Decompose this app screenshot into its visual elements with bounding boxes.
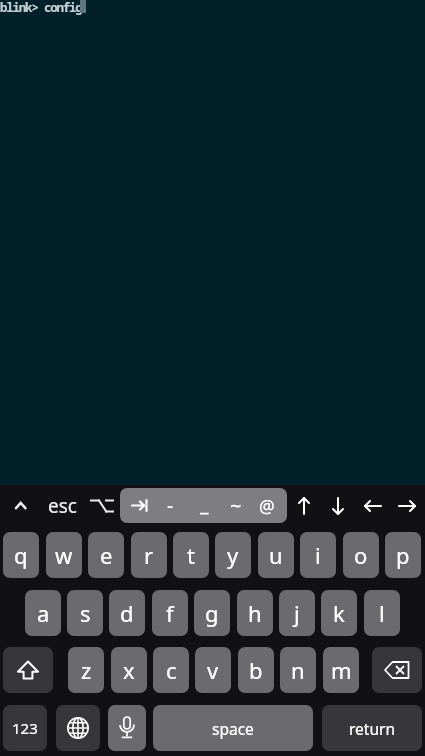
button[interactable]: k — [321, 590, 357, 636]
button[interactable]: f — [152, 590, 188, 636]
button[interactable]: g — [194, 590, 230, 636]
staticText: x — [123, 655, 135, 685]
button[interactable]: j — [279, 590, 315, 636]
button[interactable]: 123 — [3, 705, 47, 751]
button[interactable]: x — [111, 647, 147, 693]
button[interactable]: return — [322, 705, 422, 751]
button[interactable]: p — [385, 532, 421, 578]
staticText: w — [55, 540, 73, 570]
staticText: l — [379, 598, 385, 628]
staticText: i — [315, 540, 321, 570]
button[interactable] — [3, 647, 53, 693]
button[interactable]: i — [300, 532, 336, 578]
button[interactable]: r — [131, 532, 167, 578]
staticText: 123 — [12, 718, 38, 738]
staticText: o — [354, 540, 368, 570]
button[interactable] — [123, 488, 156, 523]
button[interactable]: c — [153, 647, 189, 693]
staticText: space — [212, 718, 254, 739]
button[interactable]: blink> config — [0, 0, 425, 485]
button[interactable] — [360, 493, 386, 519]
staticText: h — [248, 598, 262, 628]
staticText: esc — [48, 493, 77, 519]
button[interactable] — [325, 493, 351, 519]
staticText: n — [291, 655, 305, 685]
staticText: j — [294, 598, 300, 628]
staticText: u — [269, 540, 283, 570]
staticText: t — [187, 540, 195, 570]
button[interactable] — [291, 493, 317, 519]
staticText: y — [227, 540, 239, 570]
staticText: v — [207, 655, 219, 685]
staticText: ~ — [230, 492, 242, 519]
staticText: m — [331, 655, 352, 685]
button[interactable] — [56, 705, 100, 751]
button[interactable]: b — [238, 647, 274, 693]
staticText: q — [14, 540, 28, 570]
button[interactable]: u — [258, 532, 294, 578]
button[interactable]: o — [343, 532, 379, 578]
button[interactable]: space — [153, 705, 313, 751]
button[interactable]: y — [215, 532, 251, 578]
staticText: r — [144, 540, 154, 570]
button[interactable]: e — [88, 532, 124, 578]
staticText: p — [396, 540, 410, 570]
staticText: d — [120, 598, 134, 628]
staticText: @ — [259, 494, 275, 518]
button[interactable]: s — [67, 590, 103, 636]
staticText: return — [349, 718, 395, 739]
button[interactable]: w — [46, 532, 82, 578]
staticText: f — [166, 598, 174, 628]
button[interactable] — [87, 492, 117, 519]
button[interactable]: n — [280, 647, 316, 693]
staticText: k — [333, 598, 345, 628]
staticText: - — [167, 493, 174, 519]
button[interactable]: h — [237, 590, 273, 636]
staticText: blink> config — [0, 0, 82, 16]
button[interactable]: z — [68, 647, 104, 693]
button[interactable]: q — [3, 532, 39, 578]
staticText: a — [37, 598, 50, 628]
button[interactable]: d — [109, 590, 145, 636]
button[interactable] — [108, 705, 146, 751]
button[interactable]: a — [25, 590, 61, 636]
button[interactable]: m — [323, 647, 359, 693]
staticText: _ — [200, 491, 209, 517]
button[interactable] — [394, 493, 420, 519]
button[interactable]: t — [173, 532, 209, 578]
button[interactable] — [8, 492, 34, 519]
staticText: b — [249, 655, 263, 685]
staticText: c — [166, 655, 177, 685]
button[interactable] — [372, 647, 422, 693]
button[interactable]: v — [195, 647, 231, 693]
button[interactable]: l — [364, 590, 400, 636]
staticText: z — [81, 655, 92, 685]
staticText: e — [100, 540, 113, 570]
staticText: s — [80, 598, 91, 628]
button[interactable]: esc — [40, 492, 84, 519]
staticText: g — [205, 598, 219, 628]
